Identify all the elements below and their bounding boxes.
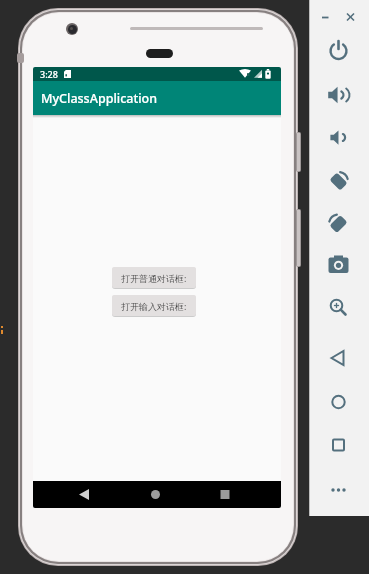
button[interactable] xyxy=(309,460,369,503)
button[interactable] xyxy=(309,202,369,245)
staticText: MyClassApplication xyxy=(41,90,158,107)
button[interactable] xyxy=(309,30,369,73)
staticText: 打开输入对话框: xyxy=(121,300,187,312)
button[interactable] xyxy=(309,288,369,331)
button[interactable]: 打开普通对话框: xyxy=(112,267,196,288)
button[interactable] xyxy=(309,331,369,374)
button[interactable] xyxy=(309,116,369,159)
button[interactable] xyxy=(115,481,198,508)
staticText: 打开普通对话框: xyxy=(121,272,187,284)
button[interactable]: 打开输入对话框: xyxy=(112,295,196,316)
staticText: 3:28 xyxy=(40,68,58,80)
button[interactable] xyxy=(33,481,115,508)
button[interactable] xyxy=(198,481,281,508)
button[interactable] xyxy=(309,417,369,460)
button[interactable] xyxy=(309,159,369,202)
button[interactable] xyxy=(309,245,369,288)
button[interactable] xyxy=(309,73,369,116)
button[interactable] xyxy=(309,374,369,417)
